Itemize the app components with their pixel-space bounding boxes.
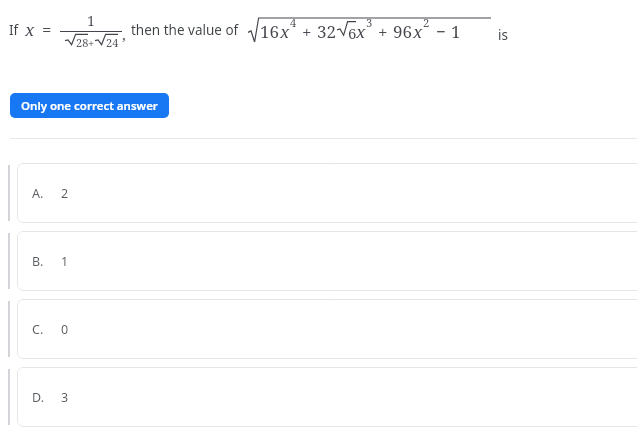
button[interactable]: D. xyxy=(17,367,637,427)
staticText: is xyxy=(498,26,508,44)
staticText: , xyxy=(122,24,126,44)
staticText: then the value of xyxy=(131,21,239,39)
staticText: x xyxy=(356,20,366,43)
staticText: 2 xyxy=(423,15,430,30)
staticText: 1 xyxy=(61,253,69,270)
staticText: + xyxy=(302,20,312,43)
staticText: + xyxy=(88,36,95,51)
staticText: If xyxy=(9,21,19,39)
staticText: 3 xyxy=(61,389,69,406)
staticText: C. xyxy=(32,321,44,338)
staticText: x xyxy=(25,18,35,41)
staticText: x xyxy=(280,20,290,43)
staticText: Only one correct answer xyxy=(21,98,158,114)
staticText: 28 xyxy=(76,35,89,50)
staticText: 3 xyxy=(366,15,373,30)
staticText: 2 xyxy=(61,185,69,202)
staticText: + xyxy=(378,20,388,43)
button[interactable]: A. xyxy=(17,163,637,223)
staticText: 0 xyxy=(61,321,69,338)
staticText: = xyxy=(42,18,52,41)
staticText: 16 xyxy=(260,20,280,43)
staticText: A. xyxy=(32,185,44,202)
staticText: B. xyxy=(32,253,44,270)
staticText: D. xyxy=(32,389,44,406)
staticText: 4 xyxy=(290,15,297,30)
staticText: 6 xyxy=(348,23,357,43)
staticText: 32 xyxy=(317,20,337,43)
button[interactable]: C. xyxy=(17,299,637,359)
staticText: − xyxy=(436,20,446,43)
staticText: 96 xyxy=(393,20,413,43)
staticText: 24 xyxy=(106,35,119,50)
button[interactable]: B. xyxy=(17,231,637,291)
staticText: 1 xyxy=(451,20,461,43)
button[interactable]: Only one correct answer xyxy=(10,93,169,118)
staticText: x xyxy=(413,20,423,43)
staticText: 1 xyxy=(87,11,95,30)
